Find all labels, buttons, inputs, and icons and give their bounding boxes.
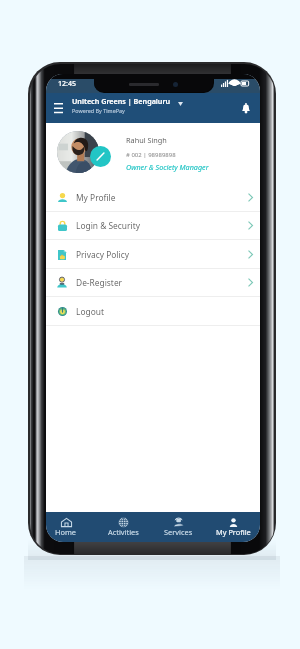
staticText: Services (164, 527, 193, 537)
button[interactable]: Profile photo (57, 131, 99, 173)
button[interactable]: My Profile (46, 184, 260, 212)
button[interactable]: Logout (46, 298, 260, 326)
staticText: My Profile (216, 527, 251, 537)
staticText: 12:45 (58, 79, 76, 89)
staticText: Logout (76, 306, 104, 317)
button[interactable]: Open navigation menu (48, 96, 68, 120)
button[interactable]: Activities (97, 512, 149, 542)
staticText: Home (55, 527, 77, 537)
staticText: Owner & Society Manager (126, 162, 209, 172)
button[interactable]: De-Register (46, 269, 260, 297)
button[interactable]: Home (46, 512, 92, 542)
staticText: Activities (108, 527, 139, 537)
staticText: Unitech Greens | Bengaluru (72, 96, 171, 106)
staticText: My Profile (76, 192, 116, 203)
button[interactable]: Login & Security (46, 212, 260, 240)
staticText: Rahul Singh (126, 135, 167, 145)
staticText: # 002 | 98989898 (126, 151, 176, 159)
staticText: Login & Security (76, 220, 140, 231)
button[interactable]: Privacy Policy (46, 241, 260, 269)
button[interactable]: My Profile (207, 512, 259, 542)
staticText: Powered By TimePay (72, 107, 125, 114)
button[interactable]: Notifications (236, 98, 256, 118)
button[interactable]: Edit profile (90, 146, 111, 167)
button[interactable]: Services (152, 512, 204, 542)
staticText: De-Register (76, 277, 123, 288)
staticText: Privacy Policy (76, 249, 129, 260)
